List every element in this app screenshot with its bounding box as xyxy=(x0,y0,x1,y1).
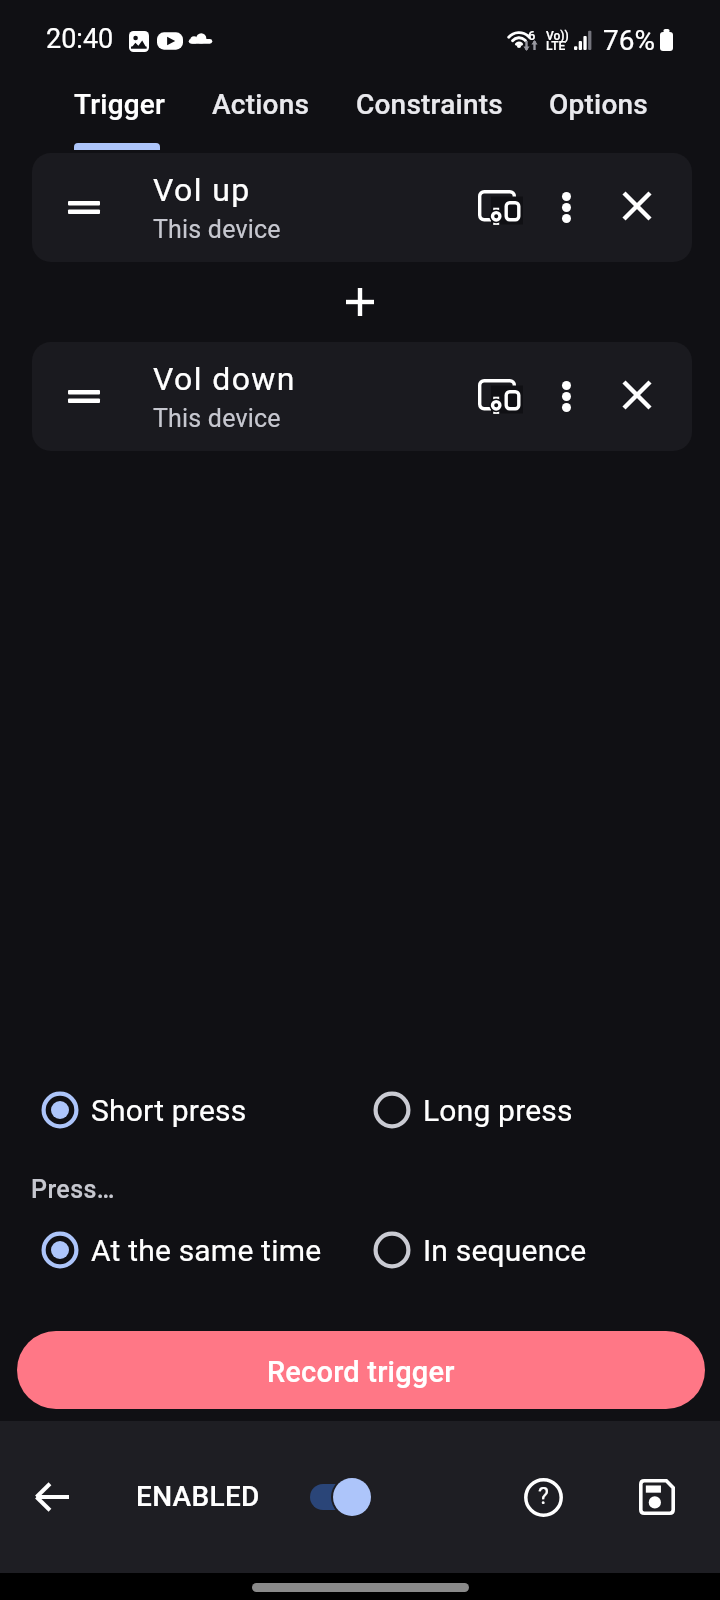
staticText: Vol up xyxy=(153,171,251,209)
button[interactable]: Add trigger xyxy=(325,267,395,337)
staticText: ? xyxy=(538,1483,549,1510)
staticText: Press… xyxy=(31,1175,115,1204)
staticText: At the same time xyxy=(91,1233,322,1268)
button[interactable]: Back xyxy=(22,1467,82,1527)
staticText: In sequence xyxy=(423,1233,587,1268)
staticText: Vol down xyxy=(153,360,296,398)
button[interactable]: Save xyxy=(627,1467,687,1527)
button[interactable]: Enabled toggle xyxy=(300,1471,382,1523)
staticText: ENABLED xyxy=(136,1480,260,1513)
button[interactable]: Help xyxy=(513,1467,573,1527)
button[interactable]: Vol down xyxy=(32,342,692,451)
staticText: Options xyxy=(549,88,648,121)
button[interactable]: Vol up xyxy=(32,153,692,262)
staticText: 6 xyxy=(528,28,536,43)
button[interactable]: Choose device xyxy=(468,175,530,237)
staticText: This device xyxy=(153,215,281,244)
button[interactable]: Actions xyxy=(189,70,333,146)
staticText: 20:40 xyxy=(46,23,114,55)
button[interactable]: In sequence xyxy=(373,1222,673,1278)
staticText: Constraints xyxy=(356,88,503,121)
staticText: Actions xyxy=(212,88,310,121)
button[interactable]: Constraints xyxy=(333,70,526,146)
button[interactable]: Remove trigger xyxy=(606,364,668,426)
button[interactable]: Options xyxy=(526,70,671,146)
staticText: Trigger xyxy=(74,88,166,121)
staticText: LTE xyxy=(546,39,566,53)
staticText: This device xyxy=(153,404,281,433)
button[interactable]: Remove trigger xyxy=(606,175,668,237)
staticText: Short press xyxy=(91,1093,247,1128)
staticText: Record trigger xyxy=(267,1355,455,1389)
button[interactable]: Record trigger xyxy=(17,1331,705,1409)
button[interactable]: More options xyxy=(540,181,592,233)
button[interactable]: Trigger xyxy=(51,70,189,146)
button[interactable]: Choose device xyxy=(468,364,530,426)
staticText: 76% xyxy=(603,24,655,57)
button[interactable]: Short press xyxy=(41,1082,341,1138)
button[interactable]: More options xyxy=(540,370,592,422)
button[interactable]: At the same time xyxy=(41,1222,341,1278)
staticText: Long press xyxy=(423,1093,573,1128)
staticText: Vo)) xyxy=(546,29,569,43)
button[interactable]: Long press xyxy=(373,1082,673,1138)
